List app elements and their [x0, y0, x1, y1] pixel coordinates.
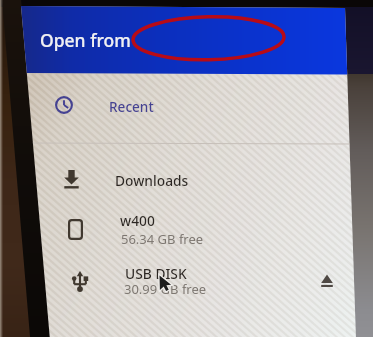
button[interactable]: Open from	[21, 6, 345, 74]
staticText: USB DISK	[125, 264, 187, 283]
button[interactable]: USB DISK	[33, 255, 350, 305]
button[interactable]: Downloads	[27, 145, 346, 205]
button[interactable]: w400	[30, 206, 348, 252]
staticText: Open from	[40, 28, 131, 52]
staticText: Downloads	[115, 171, 189, 190]
staticText: w400	[120, 211, 155, 230]
staticText: 30.99 GB free	[124, 280, 207, 298]
button[interactable]: Recent	[23, 77, 344, 142]
staticText: Recent	[109, 97, 154, 116]
staticText: 56.34 GB free	[121, 230, 204, 248]
button[interactable]: Eject USB DISK	[318, 269, 336, 291]
